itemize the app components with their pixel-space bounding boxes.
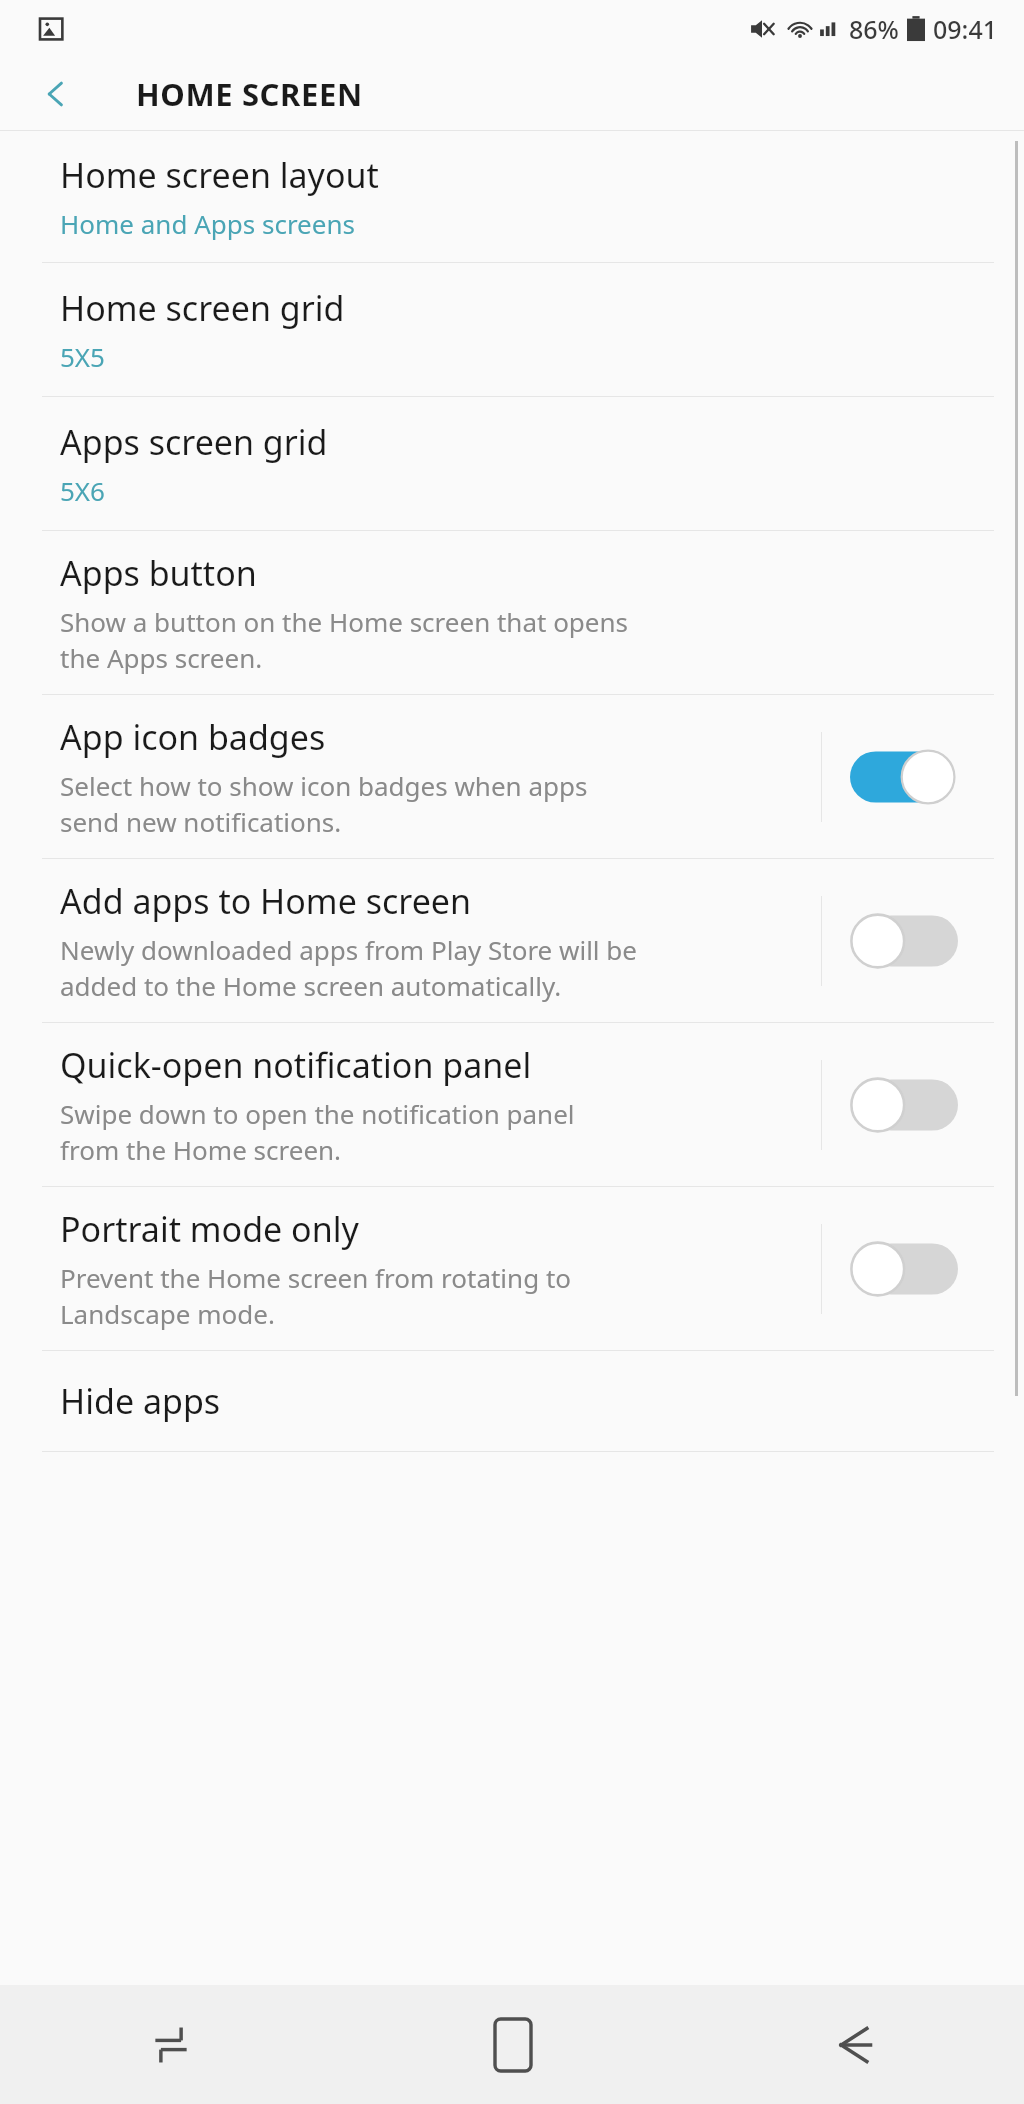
button[interactable]: Quick-open notification panel toggle bbox=[850, 1068, 962, 1142]
button[interactable]: App icon badges bbox=[0, 695, 1024, 858]
staticText: Home screen grid bbox=[60, 285, 345, 331]
button[interactable]: Hide apps bbox=[0, 1351, 1024, 1451]
button[interactable]: Home screen grid bbox=[0, 263, 1024, 396]
button[interactable]: Portrait mode only toggle bbox=[850, 1232, 962, 1306]
staticText: 09:41 bbox=[933, 12, 998, 46]
button[interactable]: Apps button bbox=[0, 531, 1024, 694]
staticText: Hide apps bbox=[60, 1378, 221, 1424]
staticText: Quick-open notification panel bbox=[60, 1042, 532, 1088]
staticText: HOME SCREEN bbox=[136, 73, 363, 115]
button[interactable]: Quick-open notification panel bbox=[0, 1023, 1024, 1186]
button[interactable]: Add apps to Home screen toggle bbox=[850, 904, 962, 978]
button[interactable]: Home bbox=[342, 1985, 683, 2104]
staticText: Prevent the Home screen from rotating to… bbox=[60, 1260, 572, 1332]
button[interactable]: Portrait mode only bbox=[0, 1187, 1024, 1350]
button[interactable]: Apps screen grid bbox=[0, 397, 1024, 530]
staticText: Select how to show icon badges when apps… bbox=[60, 768, 588, 840]
staticText: Add apps to Home screen bbox=[60, 878, 471, 924]
staticText: 5X6 bbox=[60, 473, 105, 508]
staticText: Newly downloaded apps from Play Store wi… bbox=[60, 932, 637, 1004]
staticText: Home screen layout bbox=[60, 152, 379, 198]
button[interactable]: App icon badges toggle bbox=[850, 740, 962, 814]
staticText: Show a button on the Home screen that op… bbox=[60, 604, 629, 676]
button[interactable]: Home screen layout bbox=[0, 131, 1024, 262]
button[interactable]: Back bbox=[683, 1985, 1024, 2104]
staticText: Apps screen grid bbox=[60, 419, 328, 465]
staticText: 5X5 bbox=[60, 339, 105, 374]
button[interactable]: Back bbox=[28, 66, 84, 122]
staticText: App icon badges bbox=[60, 714, 326, 760]
staticText: Portrait mode only bbox=[60, 1206, 359, 1252]
staticText: Apps button bbox=[60, 550, 257, 596]
button[interactable]: Recents bbox=[0, 1985, 342, 2104]
button[interactable]: Add apps to Home screen bbox=[0, 859, 1024, 1022]
staticText: Swipe down to open the notification pane… bbox=[60, 1096, 575, 1168]
staticText: Home and Apps screens bbox=[60, 206, 355, 241]
staticText: 86% bbox=[849, 12, 899, 46]
